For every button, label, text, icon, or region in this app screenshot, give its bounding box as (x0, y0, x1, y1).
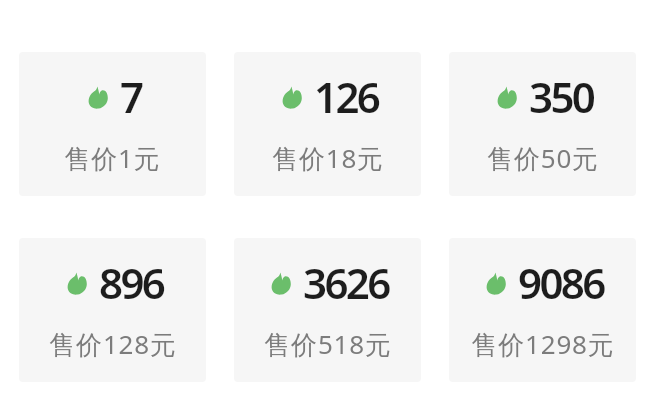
other: 能量 (486, 272, 506, 295)
staticText: 9086 (518, 254, 604, 311)
button[interactable]: 购买 3626 能量，售价518元 (234, 238, 421, 382)
other: 能量 (88, 86, 108, 109)
staticText: 售价1元 (64, 140, 161, 176)
staticText: 售价1298元 (471, 326, 615, 362)
staticText: 售价50元 (487, 140, 599, 176)
other: 能量 (271, 272, 291, 295)
staticText: 3626 (303, 254, 389, 311)
staticText: 售价18元 (272, 140, 384, 176)
staticText: 售价128元 (49, 326, 177, 362)
other: 能量 (497, 86, 517, 109)
staticText: 7 (120, 68, 142, 125)
other: 能量 (282, 86, 302, 109)
staticText: 126 (314, 68, 379, 125)
button[interactable]: 购买 9086 能量，售价1298元 (449, 238, 636, 382)
staticText: 售价518元 (264, 326, 392, 362)
staticText: 350 (529, 68, 594, 125)
button[interactable]: 购买 896 能量，售价128元 (19, 238, 206, 382)
other: 能量 (67, 272, 87, 295)
staticText: 896 (99, 254, 164, 311)
button[interactable]: 购买 7 能量，售价1元 (19, 52, 206, 196)
button[interactable]: 购买 350 能量，售价50元 (449, 52, 636, 196)
button[interactable]: 购买 126 能量，售价18元 (234, 52, 421, 196)
